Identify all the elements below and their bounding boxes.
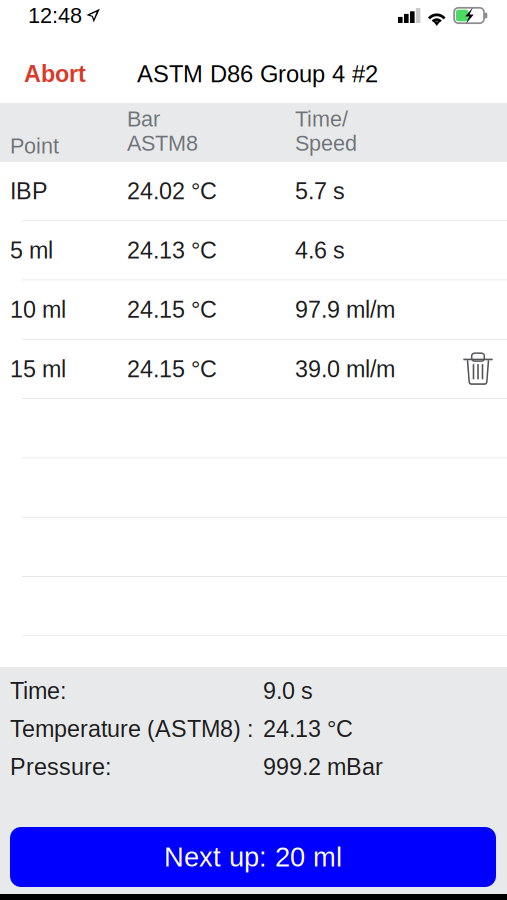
button[interactable]: Next up: 20 ml	[10, 827, 496, 887]
button[interactable]: Delete row	[449, 340, 507, 398]
staticText: 24.13 °C	[127, 237, 217, 263]
staticText: Time:	[10, 678, 66, 704]
button[interactable]: Abort	[0, 45, 104, 103]
staticText: 24.15 °C	[127, 356, 217, 382]
staticText: 999.2 mBar	[263, 754, 383, 780]
staticText: Time/	[295, 107, 348, 131]
staticText: Temperature (ASTM8) :	[10, 716, 253, 742]
staticText: 4.6 s	[295, 237, 345, 263]
staticText: 39.0 ml/m	[295, 356, 395, 382]
staticText: 9.0 s	[263, 678, 313, 704]
staticText: Bar	[127, 107, 160, 131]
staticText: 15 ml	[10, 356, 66, 382]
staticText: Next up: 20 ml	[164, 842, 342, 872]
staticText: ASTM D86 Group 4 #2	[137, 61, 378, 87]
staticText: ASTM8	[127, 131, 198, 155]
staticText: 24.13 °C	[263, 716, 353, 742]
staticText: Abort	[24, 61, 86, 87]
staticText: Point	[10, 134, 59, 158]
staticText: IBP	[10, 178, 48, 204]
staticText: 12:48	[28, 3, 82, 28]
staticText: 97.9 ml/m	[295, 297, 395, 323]
staticText: 24.02 °C	[127, 178, 217, 204]
staticText: 5.7 s	[295, 178, 345, 204]
staticText: Pressure:	[10, 754, 111, 780]
staticText: 5 ml	[10, 237, 53, 263]
staticText: Speed	[295, 131, 357, 155]
staticText: 10 ml	[10, 297, 66, 323]
staticText: 24.15 °C	[127, 297, 217, 323]
